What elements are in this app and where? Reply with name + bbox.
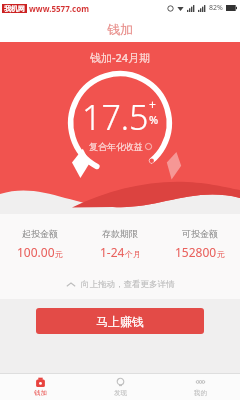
staticText: 元 bbox=[217, 249, 225, 259]
staticText: 复合年化收益 bbox=[89, 141, 143, 152]
staticText: 钱加 bbox=[34, 389, 47, 397]
staticText: 发现 bbox=[114, 389, 127, 397]
staticText: 个月 bbox=[125, 249, 141, 259]
staticText: 82% bbox=[209, 3, 223, 13]
staticText: % bbox=[149, 112, 159, 127]
staticText: 存款期限 bbox=[102, 228, 138, 239]
staticText: 152800 bbox=[175, 244, 217, 260]
staticText: 起投金额 bbox=[22, 228, 58, 239]
staticText: 钱加-24月期 bbox=[90, 50, 151, 65]
staticText: 向上拖动，查看更多详情 bbox=[81, 279, 175, 290]
button[interactable]: 我的 bbox=[160, 374, 240, 400]
staticText: 可投金额 bbox=[182, 228, 218, 239]
button[interactable]: 发现 bbox=[80, 374, 160, 400]
staticText: 马上赚钱 bbox=[96, 314, 144, 329]
staticText: 钱加 bbox=[107, 21, 133, 37]
staticText: + bbox=[149, 96, 156, 112]
button[interactable]: 马上赚钱 bbox=[36, 308, 204, 334]
staticText: 我的 bbox=[194, 389, 207, 397]
staticText: www.5577.com bbox=[29, 3, 89, 14]
button[interactable]: 向上拖动，查看更多详情 bbox=[0, 274, 240, 295]
staticText: 17.5 bbox=[82, 94, 149, 140]
button[interactable]: 钱加 bbox=[0, 374, 80, 400]
staticText: 100.00 bbox=[17, 244, 55, 260]
staticText: 1-24 bbox=[100, 244, 125, 260]
staticText: 元 bbox=[55, 249, 63, 259]
staticText: 我机网 bbox=[4, 4, 25, 13]
